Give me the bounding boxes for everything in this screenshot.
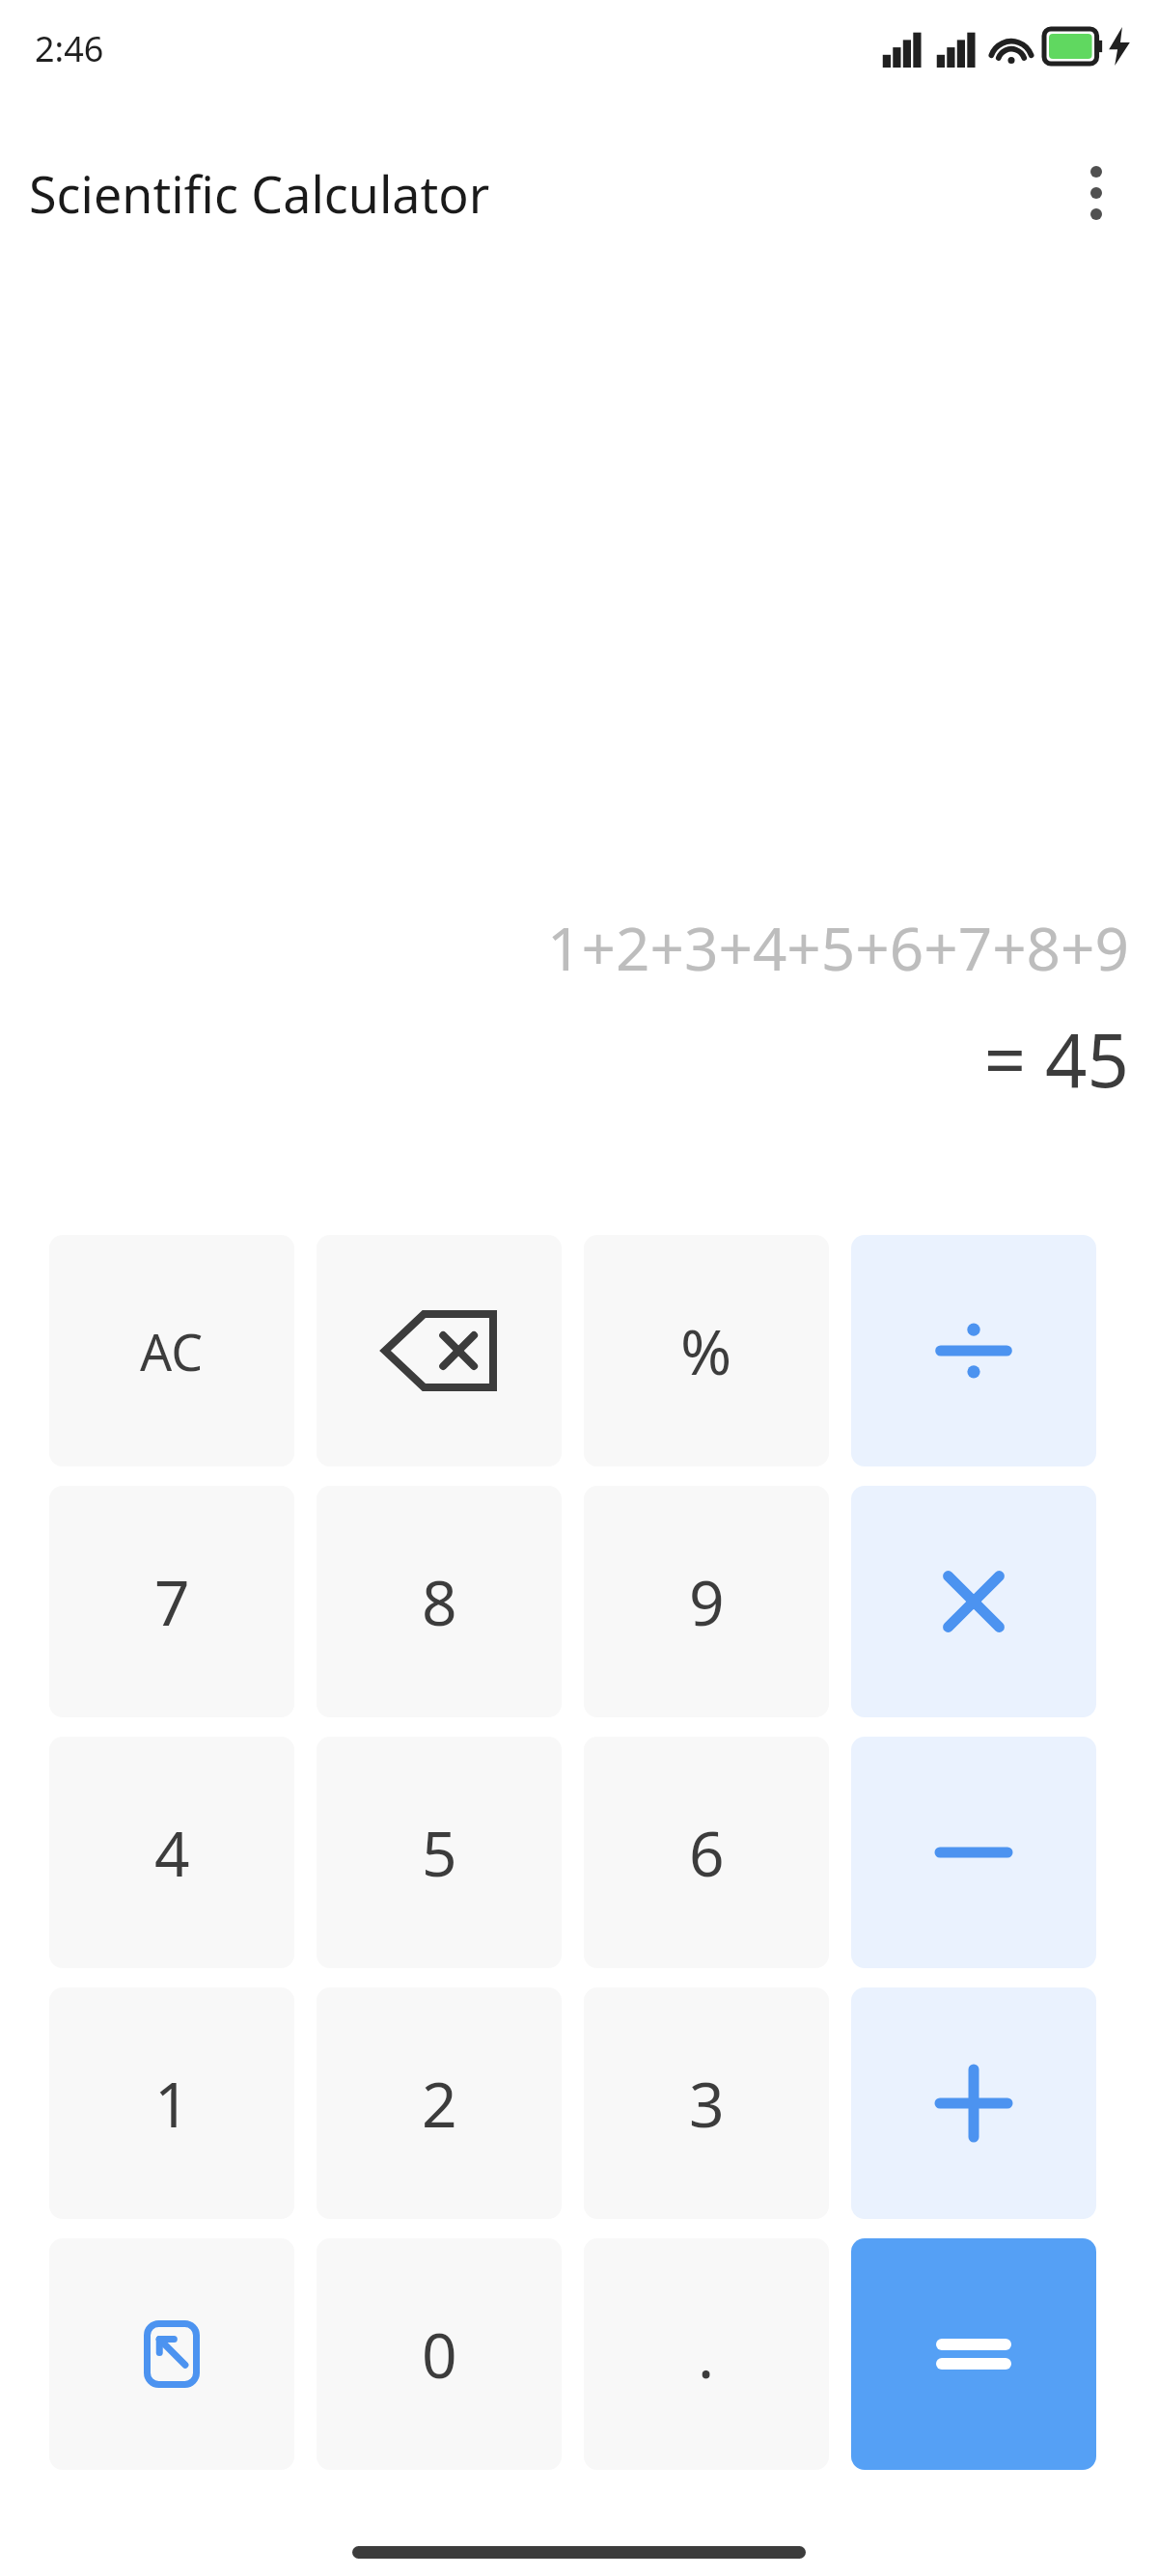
staticText: 1+2+3+4+5+6+7+8+9 [547, 907, 1129, 988]
button[interactable]: 5 [317, 1737, 562, 1968]
staticText: 3 [689, 2062, 725, 2146]
staticText: . [698, 2313, 715, 2397]
staticText: % [680, 1309, 732, 1393]
button[interactable]: % [584, 1235, 829, 1466]
button[interactable]: 3 [584, 1987, 829, 2219]
staticText: = 45 [983, 1009, 1129, 1110]
staticText: 9 [689, 1560, 725, 1644]
button[interactable]: 7 [49, 1486, 294, 1717]
staticText: Scientific Calculator [29, 159, 490, 228]
button[interactable]: Multiply [851, 1486, 1096, 1717]
button[interactable]: 0 [317, 2238, 562, 2470]
staticText: AC [140, 1317, 204, 1385]
button[interactable]: AC [49, 1235, 294, 1466]
button[interactable]: . [584, 2238, 829, 2470]
button[interactable]: Expand [49, 2238, 294, 2470]
button[interactable]: 9 [584, 1486, 829, 1717]
staticText: 6 [689, 1811, 725, 1895]
button[interactable]: Divide [851, 1235, 1096, 1466]
staticText: 0 [422, 2313, 457, 2397]
button[interactable]: 2 [317, 1987, 562, 2219]
button[interactable]: Backspace [317, 1235, 562, 1466]
staticText: 8 [422, 1560, 457, 1644]
button[interactable]: Add [851, 1987, 1096, 2219]
button[interactable]: Subtract [851, 1737, 1096, 1968]
staticText: 4 [154, 1811, 190, 1895]
button[interactable]: 8 [317, 1486, 562, 1717]
button[interactable]: 1 [49, 1987, 294, 2219]
button[interactable]: More options [1056, 152, 1137, 233]
staticText: 5 [422, 1811, 457, 1895]
staticText: 2:46 [35, 25, 104, 72]
staticText: 7 [154, 1560, 190, 1644]
button[interactable]: Equals [851, 2238, 1096, 2470]
staticText: 2 [422, 2062, 457, 2146]
button[interactable]: 6 [584, 1737, 829, 1968]
staticText: 1 [154, 2062, 190, 2146]
button[interactable]: 4 [49, 1737, 294, 1968]
